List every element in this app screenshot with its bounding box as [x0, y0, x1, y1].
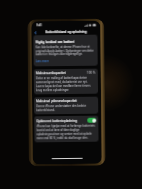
button[interactable]: Maksimumkapacitet — [34, 69, 98, 94]
staticText: Dette er en måling af batterikapaciteten… — [36, 76, 96, 92]
button[interactable]: Maksimal ydeevnekapacitet — [34, 97, 98, 114]
button[interactable]: Vigtig besked om batteri — [33, 35, 98, 66]
staticText: Maksimal ydeevnekapacitet — [36, 99, 77, 103]
staticText: iPhone kan hjælpe med at forlænge batter… — [36, 124, 96, 140]
staticText: 100 % — [87, 71, 96, 75]
button[interactable]: Optimeret batteriopladning — [34, 116, 98, 124]
staticText: Maksimumkapacitet — [36, 71, 66, 75]
staticText: Vigtig besked om batteri — [35, 40, 74, 44]
staticText: Batteritilstand og opladning — [45, 30, 87, 34]
staticText: Optimeret batteriopladning — [36, 119, 77, 123]
staticText: Kan ikke bekræfte, at denne iPhone har e… — [35, 45, 96, 56]
staticText: 9:41 — [36, 23, 42, 27]
staticText: Denne iPhone understøtter den bedste bat… — [36, 104, 96, 112]
button[interactable]: Tilbage — [33, 30, 37, 35]
button[interactable]: Læs mere — [36, 59, 50, 63]
button[interactable]: Optimeret batteriopladning — [87, 118, 96, 123]
